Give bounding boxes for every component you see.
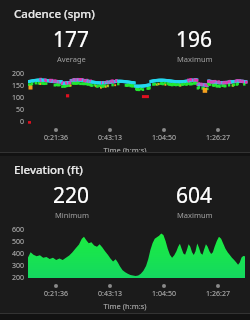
staticText: Cadence (spm) [14,6,95,22]
staticText: 0:43:13 [98,289,122,299]
staticText: 1:26:27 [206,289,230,299]
staticText: 177 [53,25,90,54]
staticText: 600 [12,225,25,235]
staticText: 150 [12,81,25,91]
staticText: 604 [176,181,213,210]
staticText: Maximum [177,210,213,220]
staticText: Average [57,54,86,64]
staticText: 0:21:36 [44,289,68,299]
other: Cadence chart [28,73,245,122]
staticText: Elevation (ft) [14,162,83,178]
button[interactable]: Elevation (ft) [0,156,250,313]
staticText: 0:21:36 [44,133,68,143]
staticText: 220 [53,181,90,210]
staticText: Maximum [177,54,213,64]
staticText: 1:04:50 [152,133,176,143]
staticText: 50 [16,105,25,115]
staticText: 196 [176,25,213,54]
staticText: Time (h:m:s) [0,145,250,152]
other: Elevation chart [28,229,245,278]
staticText: 1:04:50 [152,289,176,299]
staticText: 400 [12,249,25,259]
staticText: 0:43:13 [98,133,122,143]
staticText: 200 [12,273,25,283]
staticText: 500 [12,237,25,247]
button[interactable]: Cadence (spm) [0,0,250,152]
staticText: Time (h:m:s) [0,301,250,311]
staticText: 1:26:27 [206,133,230,143]
staticText: Minimum [55,210,89,220]
staticText: 100 [12,93,25,103]
staticText: 0 [20,117,25,127]
staticText: 300 [12,261,25,271]
staticText: 200 [12,69,25,79]
